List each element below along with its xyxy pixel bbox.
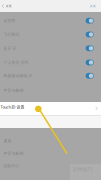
staticText: 声音与触感 — [3, 151, 23, 156]
button[interactable]: Touch-ID 设置 — [0, 102, 101, 115]
staticText: 飞行模式 — [3, 32, 19, 37]
staticText: Touch-ID 设置 — [0, 104, 24, 110]
staticText: 设置 — [6, 4, 12, 8]
staticText: 蜂窝移动网络 开 — [3, 73, 32, 78]
staticText: 通用 — [3, 138, 11, 143]
button[interactable]: 飞行模式 — [0, 28, 101, 41]
staticText: 软件技巧 — [73, 166, 93, 173]
staticText: 控制中心 — [3, 163, 19, 168]
staticText: 蓝牙 开 — [3, 46, 16, 51]
button[interactable]: 控制中心 — [0, 159, 101, 172]
staticText: 个人热点 关闭 — [3, 60, 28, 65]
button[interactable]: 返回 设置 — [0, 0, 12, 12]
button[interactable]: 蜂窝移动网络 开 — [0, 69, 101, 82]
button[interactable]: 通用 — [0, 134, 101, 147]
staticText: 声音与触感 — [3, 88, 23, 93]
staticText: 反馈 — [90, 4, 96, 8]
button[interactable]: 个人热点 关闭 — [0, 56, 101, 69]
button[interactable]: 反馈 — [90, 0, 101, 12]
button[interactable]: 声音与触感 — [0, 147, 101, 160]
staticText: 运营商 — [3, 18, 15, 23]
button[interactable]: 运营商 — [0, 14, 101, 27]
button[interactable]: 蓝牙 开 — [0, 42, 101, 55]
